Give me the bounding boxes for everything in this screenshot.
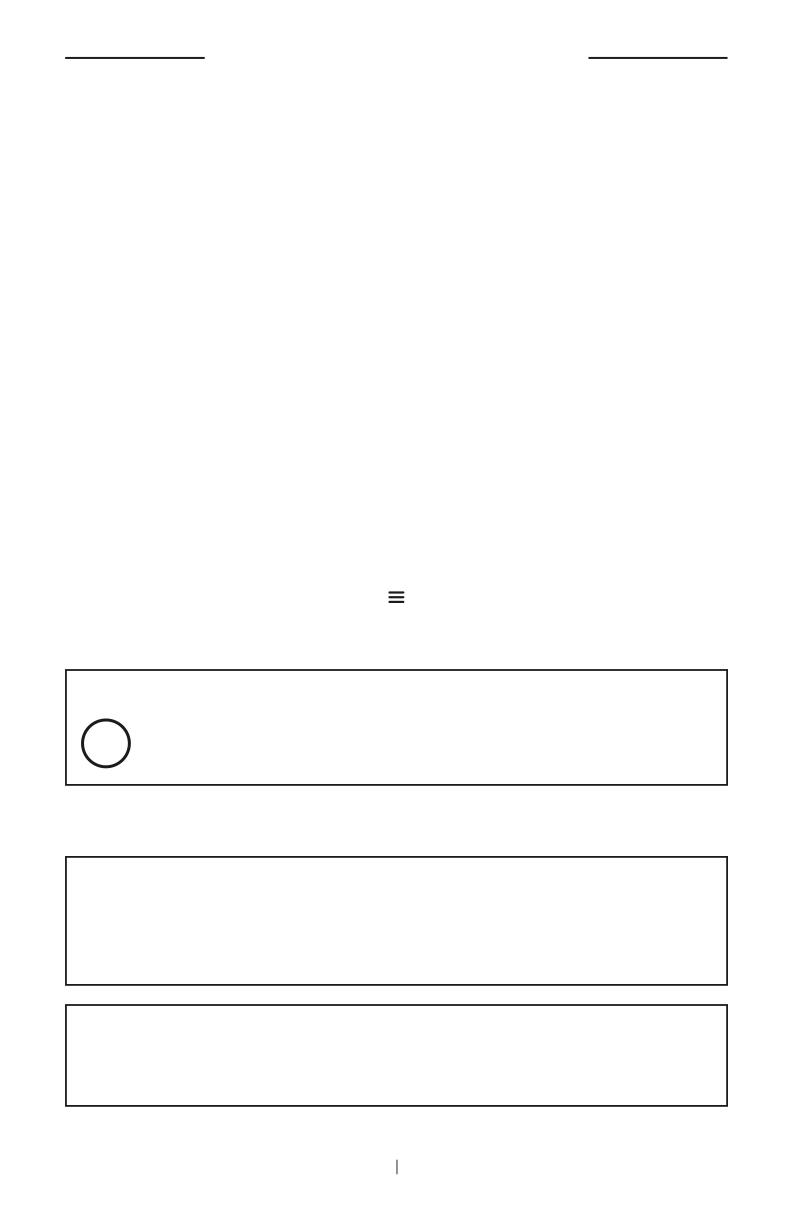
button[interactable]: Menu — [388, 591, 404, 603]
button[interactable]: Section 2 — [65, 1004, 728, 1107]
button[interactable]: Back — [65, 57, 205, 59]
button[interactable]: Profile — [65, 669, 728, 786]
button[interactable]: More — [588, 57, 728, 59]
button[interactable]: Section 1 — [65, 856, 728, 986]
